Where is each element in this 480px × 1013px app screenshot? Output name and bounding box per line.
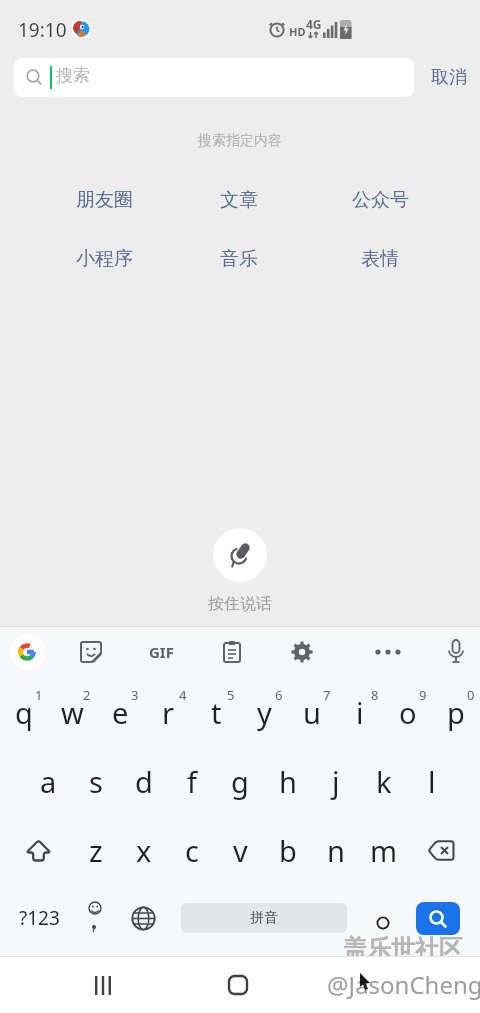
button[interactable] [366, 635, 410, 669]
staticText: 公众号 [352, 188, 409, 212]
staticText: r [162, 693, 174, 732]
staticText: HD [289, 24, 306, 39]
staticText: x [136, 831, 152, 870]
button[interactable] [72, 885, 118, 951]
staticText: 表情 [361, 247, 399, 271]
button[interactable]: w [48, 677, 96, 747]
staticText: 按住说话 [0, 594, 480, 614]
button[interactable]: 文章 [179, 186, 299, 214]
staticText: g [231, 762, 249, 801]
button[interactable] [439, 635, 473, 669]
staticText: 取消 [431, 66, 467, 89]
button[interactable]: 公众号 [320, 186, 440, 214]
button[interactable]: o [384, 677, 432, 747]
button[interactable]: c [168, 816, 216, 885]
button[interactable]: 小程序 [44, 245, 164, 273]
staticText: z [89, 831, 103, 870]
staticText: 8 [371, 686, 379, 704]
button[interactable]: 朋友圈 [44, 186, 164, 214]
staticText: 搜索 [56, 65, 90, 86]
button[interactable]: s [72, 747, 120, 816]
button[interactable]: a [24, 747, 72, 816]
staticText: i [356, 693, 364, 732]
button[interactable] [213, 528, 267, 582]
button[interactable] [8, 816, 68, 885]
button[interactable]: GIF [138, 635, 184, 669]
staticText: s [89, 762, 103, 801]
button[interactable]: m [360, 816, 408, 885]
staticText: y [257, 693, 272, 732]
staticText: b [279, 831, 297, 870]
staticText: k [376, 762, 392, 801]
button[interactable]: k [360, 747, 408, 816]
staticText: n [327, 831, 345, 870]
staticText: 拼音 [250, 909, 278, 927]
staticText: 文章 [220, 188, 258, 212]
button[interactable] [357, 885, 409, 951]
button[interactable] [120, 885, 166, 951]
button[interactable] [215, 635, 249, 669]
staticText: v [233, 831, 248, 870]
button[interactable]: n [312, 816, 360, 885]
staticText: 4G [306, 16, 322, 32]
staticText: 小程序 [76, 247, 133, 271]
staticText: 盖乐世社区 [343, 934, 463, 964]
staticText: 19:10 [18, 17, 67, 43]
staticText: p [447, 693, 465, 732]
button[interactable]: q [0, 677, 48, 747]
staticText: 6 [275, 686, 283, 704]
staticText: j [332, 762, 340, 801]
button[interactable]: v [216, 816, 264, 885]
staticText: t [211, 693, 222, 732]
button[interactable]: g [216, 747, 264, 816]
button[interactable]: l [408, 747, 456, 816]
button[interactable]: i [336, 677, 384, 747]
button[interactable]: ?123 [10, 885, 68, 951]
staticText: f [187, 762, 197, 801]
staticText: h [279, 762, 297, 801]
button[interactable]: e [96, 677, 144, 747]
button[interactable] [416, 902, 460, 935]
staticText: 音乐 [220, 247, 258, 271]
button[interactable]: z [72, 816, 120, 885]
staticText: 7 [323, 686, 331, 704]
button[interactable]: 表情 [320, 245, 440, 273]
staticText: e [112, 693, 129, 732]
button[interactable]: r [144, 677, 192, 747]
button[interactable]: p [432, 677, 480, 747]
button[interactable]: y [240, 677, 288, 747]
button[interactable]: 搜索 [14, 58, 414, 97]
button[interactable]: u [288, 677, 336, 747]
button[interactable] [75, 962, 131, 1008]
staticText: 朋友圈 [76, 188, 133, 212]
button[interactable]: h [264, 747, 312, 816]
staticText: 搜索指定内容 [0, 132, 480, 150]
button[interactable]: d [120, 747, 168, 816]
button[interactable] [412, 816, 472, 885]
staticText: 9 [419, 686, 427, 704]
staticText: GIF [149, 642, 174, 662]
button[interactable]: j [312, 747, 360, 816]
button[interactable] [74, 635, 108, 669]
staticText: w [61, 693, 84, 732]
button[interactable]: t [192, 677, 240, 747]
staticText: 3 [131, 686, 139, 704]
staticText: d [135, 762, 153, 801]
staticText: @JasonCheng [327, 968, 480, 1001]
button[interactable]: x [120, 816, 168, 885]
button[interactable]: 音乐 [179, 245, 299, 273]
button[interactable] [210, 962, 266, 1008]
staticText: 0 [467, 686, 475, 704]
staticText: c [185, 831, 199, 870]
staticText: m [370, 831, 398, 870]
staticText: q [15, 693, 33, 732]
staticText: 4 [179, 686, 187, 704]
button[interactable]: 拼音 [181, 903, 347, 933]
button[interactable]: 取消 [418, 58, 480, 97]
button[interactable] [285, 635, 319, 669]
button[interactable] [10, 635, 44, 669]
staticText: 5 [227, 686, 235, 704]
button[interactable]: b [264, 816, 312, 885]
button[interactable]: f [168, 747, 216, 816]
staticText: 2 [83, 686, 91, 704]
